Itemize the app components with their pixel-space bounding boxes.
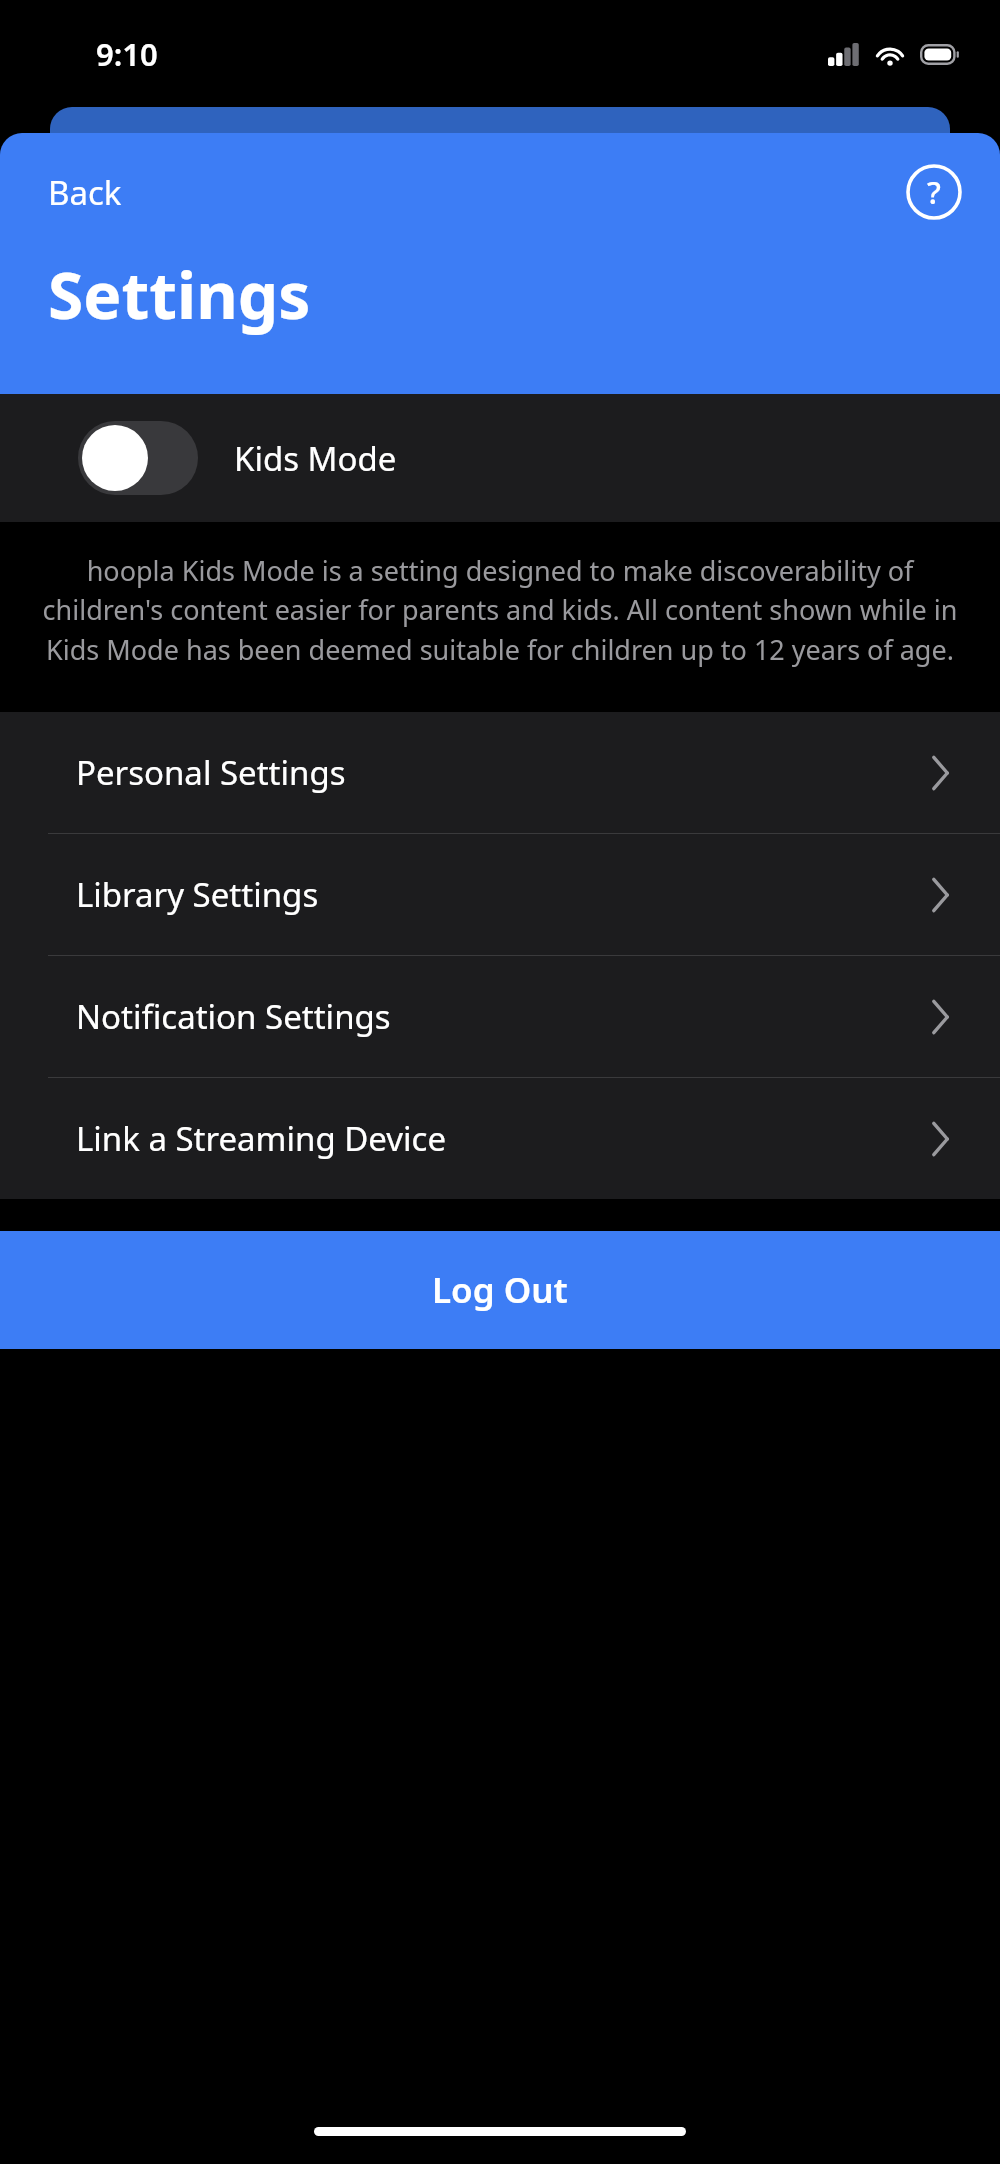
- staticText: Kids Mode: [234, 436, 397, 481]
- staticText: Back: [48, 170, 122, 215]
- staticText: Settings: [48, 251, 311, 338]
- staticText: 9:10: [96, 33, 158, 75]
- button[interactable]: Log Out: [0, 1231, 1000, 1349]
- staticText: Personal Settings: [76, 750, 346, 795]
- button[interactable]: Back: [0, 156, 148, 229]
- button[interactable]: Personal Settings: [0, 712, 1000, 833]
- staticText: Notification Settings: [76, 994, 391, 1039]
- button[interactable]: Notification Settings: [0, 956, 1000, 1077]
- button[interactable]: Library Settings: [0, 834, 1000, 955]
- staticText: hoopla Kids Mode is a setting designed t…: [36, 552, 964, 668]
- staticText: Link a Streaming Device: [76, 1116, 447, 1161]
- staticText: Library Settings: [76, 872, 319, 917]
- button[interactable]: Kids Mode: [0, 394, 1000, 522]
- staticText: ?: [927, 171, 941, 213]
- staticText: Log Out: [432, 1266, 568, 1314]
- button[interactable]: Link a Streaming Device: [0, 1078, 1000, 1199]
- button[interactable]: Help: [898, 156, 970, 228]
